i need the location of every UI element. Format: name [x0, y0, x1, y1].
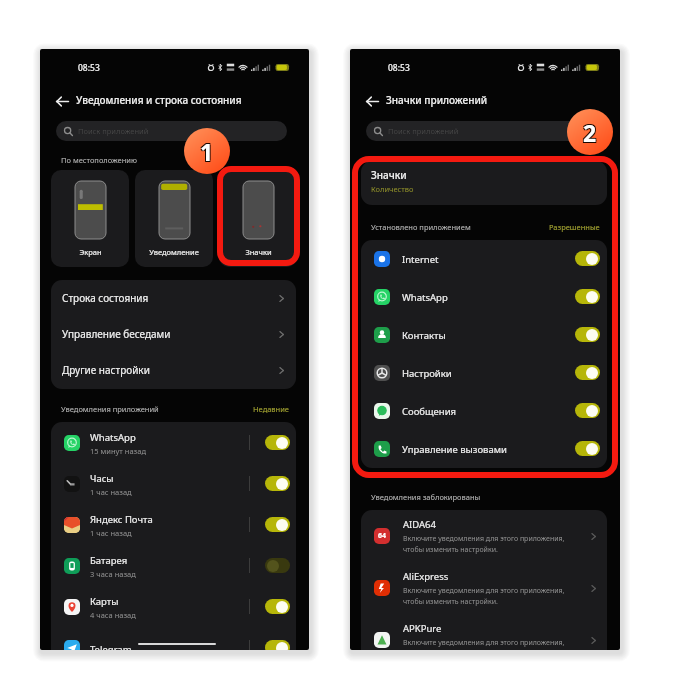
staticText: 1 — [200, 136, 214, 167]
staticText: Управление беседами — [62, 327, 171, 341]
button[interactable]: Toggle on — [575, 403, 600, 418]
staticText: Экран — [79, 247, 102, 257]
staticText: Telegram — [90, 643, 132, 650]
staticText: Часы — [90, 472, 114, 485]
staticText: Включите уведомления для этого приложени… — [403, 534, 578, 554]
staticText: 08:53 — [78, 62, 100, 74]
button[interactable]: 64 — [361, 510, 607, 562]
button[interactable]: Настройки — [361, 354, 607, 392]
button[interactable]: Экран — [51, 170, 129, 267]
button[interactable]: Поиск приложений — [56, 121, 287, 141]
staticText: WhatsApp — [402, 291, 448, 304]
button[interactable]: Значки — [219, 170, 297, 267]
staticText: Включите уведомления для этого приложени… — [403, 638, 578, 650]
staticText: Значки — [371, 168, 407, 182]
button[interactable]: Батарея — [51, 545, 296, 586]
staticText: 1 — [199, 135, 213, 166]
button[interactable]: AliExpress — [361, 562, 607, 614]
staticText: 64 — [378, 531, 387, 541]
button[interactable]: Другие настройки — [51, 352, 296, 388]
button[interactable]: Toggle on — [265, 435, 290, 450]
button[interactable]: Toggle on — [575, 441, 600, 456]
staticText: 1 — [199, 137, 213, 168]
staticText: 2 — [582, 118, 596, 149]
staticText: Строка состояния — [62, 291, 149, 305]
button[interactable]: Toggle on — [575, 251, 600, 266]
staticText: 15 минут назад — [90, 446, 146, 456]
button[interactable]: Toggle on — [575, 289, 600, 304]
button[interactable]: Toggle on — [575, 327, 600, 342]
staticText: 2 — [584, 116, 598, 147]
staticText: Другие настройки — [62, 363, 150, 377]
staticText: Сообщения — [402, 405, 457, 418]
staticText: Управление вызовами — [402, 443, 507, 456]
button[interactable]: Управление вызовами — [361, 430, 607, 468]
button[interactable]: Поиск приложений — [366, 121, 597, 141]
staticText: 1 час назад — [90, 528, 132, 538]
staticText: 2 — [582, 116, 596, 147]
button[interactable]: Яндекс Почта — [51, 504, 296, 545]
button[interactable]: Toggle on — [265, 517, 290, 532]
button[interactable]: Internet — [361, 240, 607, 278]
staticText: 1 — [201, 137, 215, 168]
staticText: Включите уведомления для этого приложени… — [403, 586, 578, 606]
button[interactable]: APKPure — [361, 614, 607, 650]
staticText: Уведомления и строка состояния — [76, 93, 242, 107]
staticText: 1 час назад — [90, 487, 132, 497]
button[interactable]: Значки — [361, 161, 607, 205]
staticText: Значки — [245, 247, 272, 257]
button[interactable]: Сообщения — [361, 392, 607, 430]
button[interactable]: Недавние — [253, 404, 289, 414]
button[interactable]: Toggle on — [575, 365, 600, 380]
button[interactable]: Уведомление — [135, 170, 213, 267]
staticText: Количество — [371, 184, 414, 194]
staticText: 1 — [201, 135, 215, 166]
staticText: Батарея — [90, 554, 128, 567]
staticText: AIDA64 — [403, 518, 436, 531]
staticText: Разрешенные — [549, 222, 600, 232]
button[interactable]: Карты — [51, 586, 296, 627]
button[interactable]: Разрешенные — [549, 222, 600, 232]
button[interactable]: Toggle on — [265, 476, 290, 491]
staticText: 3 часа назад — [90, 569, 136, 579]
button[interactable]: Toggle on — [265, 640, 290, 650]
staticText: 4 часа назад — [90, 610, 136, 620]
button[interactable]: WhatsApp — [51, 422, 296, 463]
button[interactable]: Toggle off — [265, 558, 290, 573]
staticText: Недавние — [253, 404, 289, 414]
staticText: По местоположению — [61, 155, 137, 165]
staticText: Уведомления приложений — [61, 404, 159, 414]
staticText: Установлено приложением — [371, 222, 471, 232]
staticText: WhatsApp — [90, 431, 136, 444]
button[interactable]: Часы — [51, 463, 296, 504]
staticText: Уведомление — [149, 247, 199, 257]
staticText: AliExpress — [403, 570, 449, 583]
button[interactable]: Управление беседами — [51, 316, 296, 352]
staticText: Яндекс Почта — [90, 513, 153, 526]
button[interactable]: Контакты — [361, 316, 607, 354]
staticText: Значки приложений — [386, 93, 488, 107]
staticText: Internet — [402, 253, 439, 266]
button[interactable]: Строка состояния — [51, 280, 296, 316]
staticText: Поиск приложений — [388, 126, 459, 136]
staticText: Уведомления заблокированы — [371, 492, 481, 502]
staticText: 2 — [584, 118, 598, 149]
button[interactable]: Back — [361, 90, 383, 112]
button[interactable]: Back — [51, 90, 73, 112]
staticText: APKPure — [403, 622, 442, 635]
button[interactable]: WhatsApp — [361, 278, 607, 316]
button[interactable]: Toggle on — [265, 599, 290, 614]
staticText: Настройки — [402, 367, 452, 380]
staticText: Карты — [90, 595, 119, 608]
staticText: Поиск приложений — [78, 126, 149, 136]
staticText: 08:53 — [388, 62, 410, 74]
staticText: Контакты — [402, 329, 446, 342]
staticText: 2 — [583, 117, 597, 148]
button[interactable]: Telegram — [51, 627, 296, 650]
